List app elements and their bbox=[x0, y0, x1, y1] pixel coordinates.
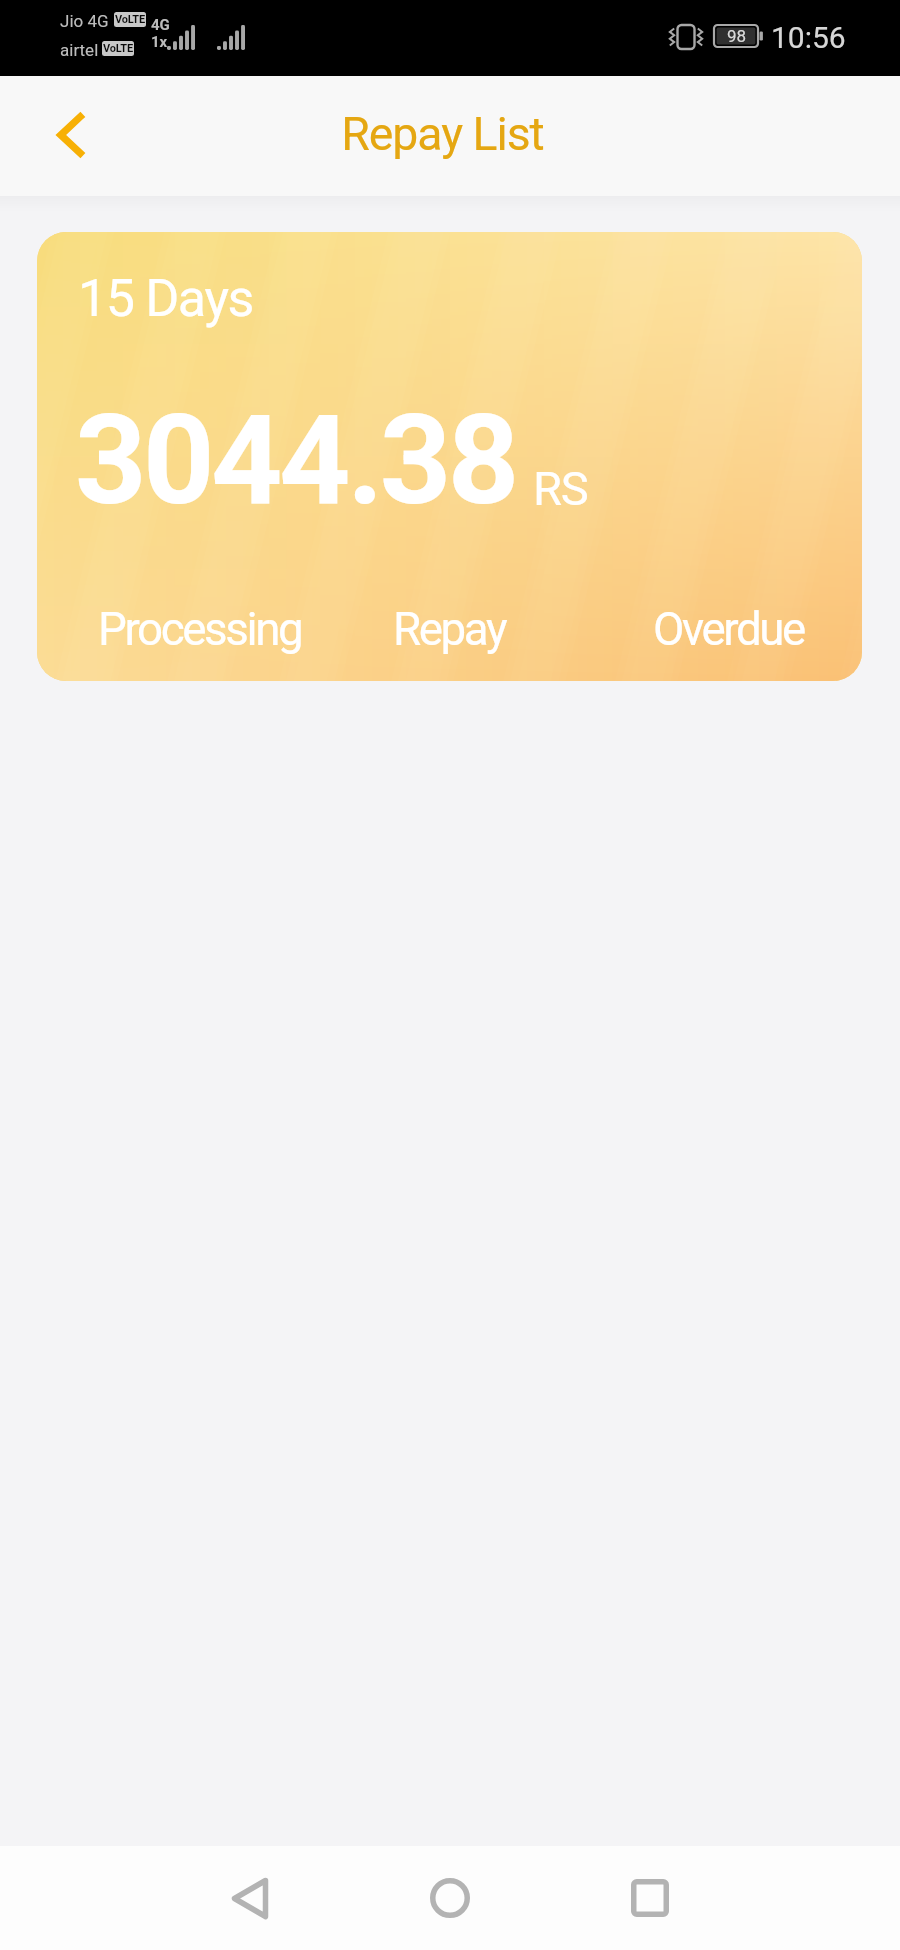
staticText: 10:56 bbox=[771, 20, 846, 55]
staticText: 15 Days bbox=[78, 268, 254, 329]
button[interactable]: Back bbox=[22, 90, 114, 182]
staticText: Jio 4G bbox=[60, 11, 109, 31]
button[interactable]: Recents bbox=[600, 1848, 700, 1948]
staticText: 1x bbox=[151, 33, 168, 51]
button[interactable]: Repay bbox=[393, 603, 506, 657]
staticText: RS bbox=[533, 461, 588, 516]
staticText: airtel bbox=[60, 40, 99, 60]
staticText: 3044.38 bbox=[75, 387, 516, 533]
button[interactable]: Home bbox=[400, 1848, 500, 1948]
button[interactable]: Back bbox=[200, 1848, 300, 1948]
staticText: VoLTE bbox=[115, 13, 145, 26]
button[interactable]: 15 Days bbox=[37, 232, 862, 681]
staticText: Processing bbox=[98, 603, 302, 657]
staticText: Repay bbox=[393, 603, 506, 657]
staticText: 4G bbox=[151, 16, 170, 34]
staticText: 98 bbox=[727, 26, 747, 46]
staticText: Repay List bbox=[341, 107, 544, 161]
staticText: Overdue bbox=[653, 603, 804, 657]
staticText: VoLTE bbox=[103, 42, 133, 55]
button[interactable]: Overdue bbox=[653, 603, 804, 657]
button[interactable]: Processing bbox=[98, 603, 302, 657]
